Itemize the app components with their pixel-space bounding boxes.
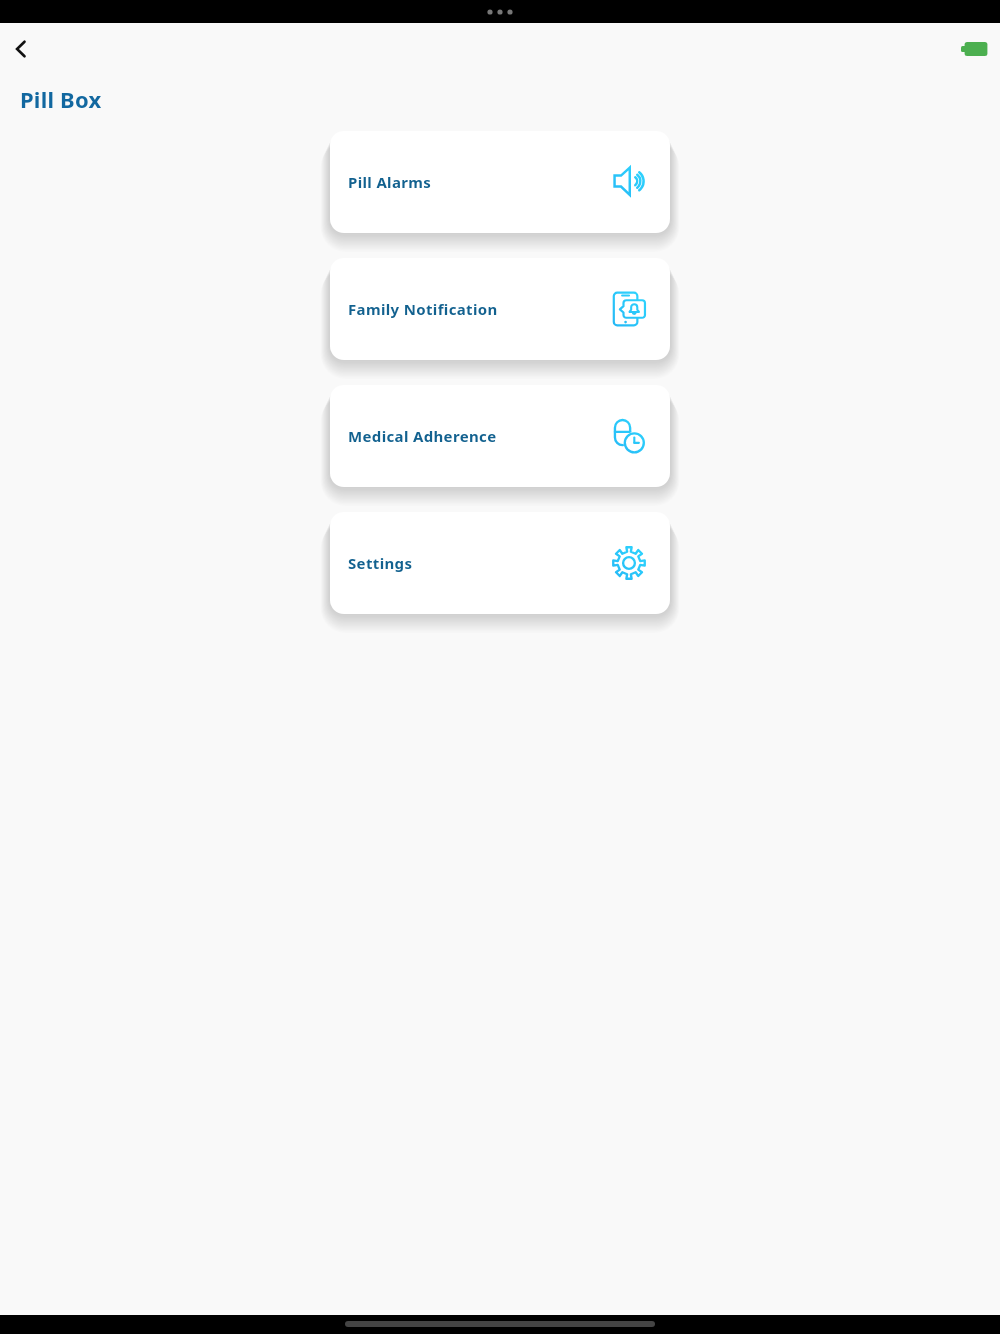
- button[interactable]: Settings: [330, 512, 670, 614]
- staticText: Family Notification: [348, 299, 608, 319]
- staticText: Settings: [348, 553, 608, 573]
- button[interactable]: Family Notification: [330, 258, 670, 360]
- staticText: Pill Box: [20, 84, 102, 114]
- button[interactable]: Battery: [958, 35, 994, 63]
- staticText: Pill Alarms: [348, 172, 608, 192]
- button[interactable]: Pill Alarms: [330, 131, 670, 233]
- button[interactable]: Back: [4, 32, 38, 66]
- button[interactable]: Medical Adherence: [330, 385, 670, 487]
- staticText: Medical Adherence: [348, 426, 608, 446]
